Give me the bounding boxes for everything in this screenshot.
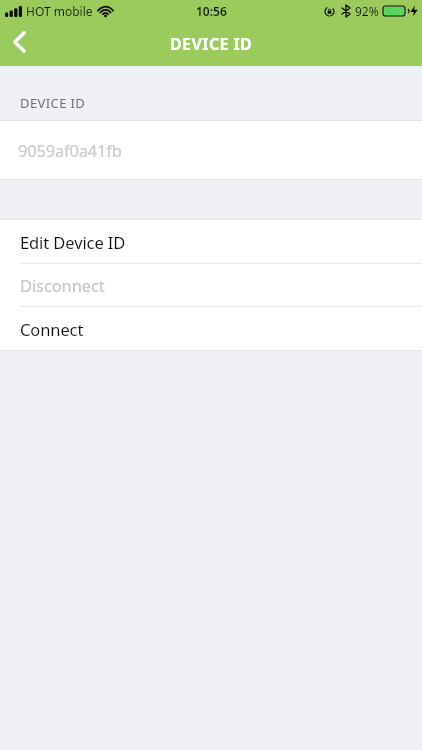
button[interactable]: 9059af0a41fb bbox=[0, 121, 422, 179]
button[interactable] bbox=[0, 22, 44, 66]
staticText: 10:56 bbox=[196, 3, 227, 19]
staticText: Connect bbox=[20, 318, 84, 340]
button[interactable]: Edit Device ID bbox=[0, 220, 422, 263]
staticText: 9059af0a41fb bbox=[18, 139, 122, 161]
staticText: DEVICE ID bbox=[170, 33, 253, 55]
staticText: Edit Device ID bbox=[20, 231, 126, 253]
staticText: Disconnect bbox=[20, 274, 105, 296]
button[interactable]: Disconnect bbox=[0, 264, 422, 306]
staticText: HOT mobile bbox=[26, 3, 93, 19]
staticText: 92% bbox=[355, 3, 379, 19]
button[interactable]: Connect bbox=[0, 307, 422, 350]
staticText: DEVICE ID bbox=[20, 94, 86, 112]
